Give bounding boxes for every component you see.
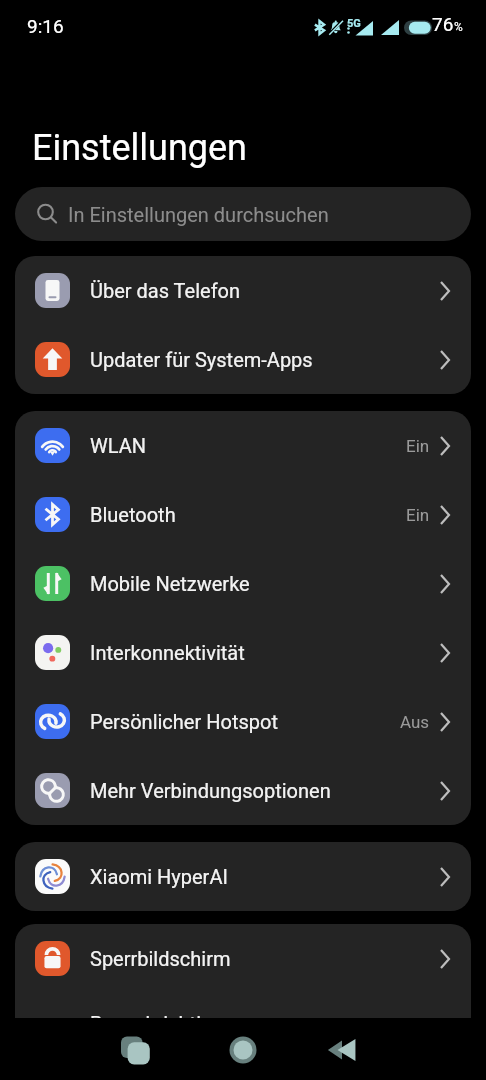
staticText: Benachrichtigungen xyxy=(90,1012,268,1035)
button[interactable]: Recent apps xyxy=(108,1022,164,1078)
button[interactable]: Benachrichtigungen xyxy=(15,993,471,1062)
staticText: WLAN xyxy=(90,434,147,457)
button[interactable]: Bluetooth xyxy=(15,480,471,549)
staticText: Ein xyxy=(406,505,430,525)
staticText: Updater für System-Apps xyxy=(90,348,313,371)
button[interactable]: Updater für System-Apps xyxy=(15,325,471,394)
staticText: % xyxy=(454,20,463,34)
staticText: 5G xyxy=(347,17,361,30)
button[interactable]: Xiaomi HyperAI xyxy=(15,842,471,911)
staticText: Aus xyxy=(400,712,430,732)
staticText: Ein xyxy=(406,436,430,456)
button[interactable]: Über das Telefon xyxy=(15,256,471,325)
staticText: Mehr Verbindungsoptionen xyxy=(90,779,331,802)
staticText: Bluetooth xyxy=(90,503,176,526)
staticText: Interkonnektivität xyxy=(90,641,245,664)
staticText: Mobile Netzwerke xyxy=(90,572,250,595)
button[interactable]: In Einstellungen durchsuchen xyxy=(15,187,471,241)
staticText: Persönlicher Hotspot xyxy=(90,710,278,733)
staticText: 76 xyxy=(432,13,454,35)
button[interactable]: WLAN xyxy=(15,411,471,480)
button[interactable]: Interkonnektivität xyxy=(15,618,471,687)
button[interactable]: Home xyxy=(215,1022,271,1078)
button[interactable]: Mobile Netzwerke xyxy=(15,549,471,618)
button[interactable]: Mehr Verbindungsoptionen xyxy=(15,756,471,825)
button[interactable]: Sperrbildschirm xyxy=(15,924,471,993)
staticText: In Einstellungen durchsuchen xyxy=(68,203,329,226)
staticText: Sperrbildschirm xyxy=(90,947,231,970)
staticText: 9:16 xyxy=(27,15,64,37)
button[interactable]: Back xyxy=(314,1022,370,1078)
staticText: Xiaomi HyperAI xyxy=(90,865,228,888)
staticText: Über das Telefon xyxy=(90,279,241,302)
staticText: Einstellungen xyxy=(32,127,247,169)
button[interactable]: Persönlicher Hotspot xyxy=(15,687,471,756)
